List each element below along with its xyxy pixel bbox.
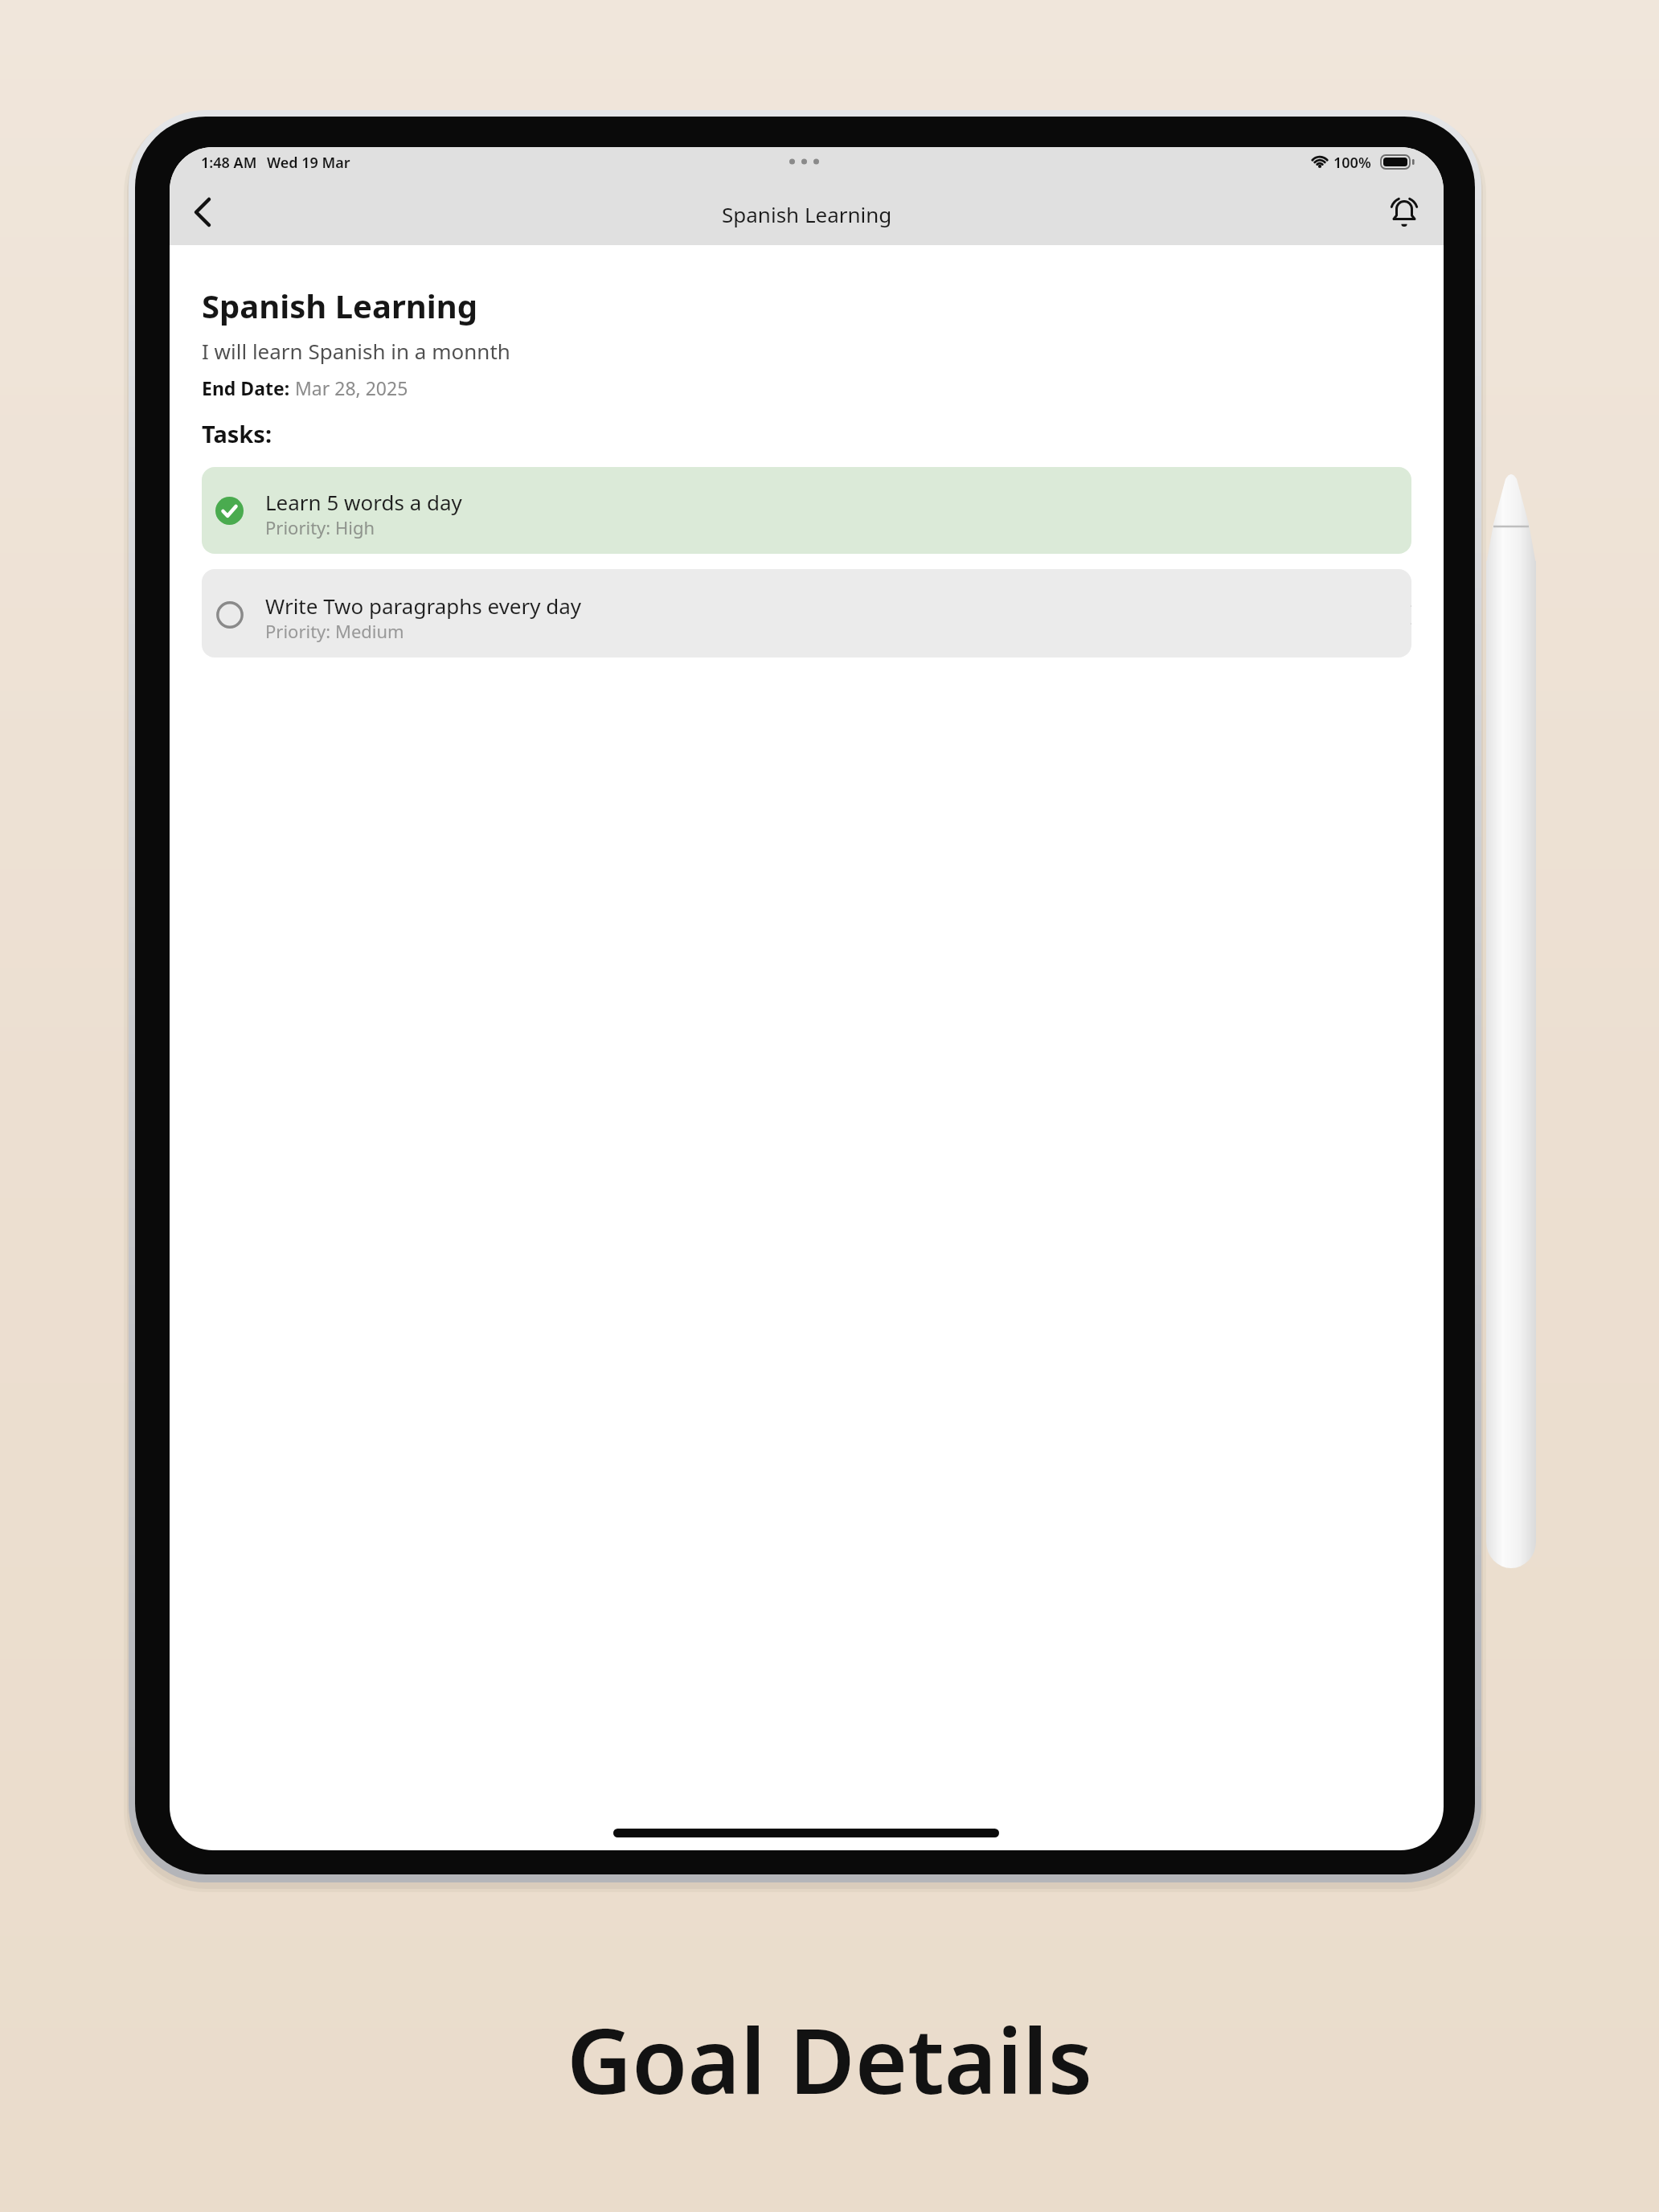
button[interactable]: Write Two paragraphs every day — [202, 569, 1411, 657]
staticText: End Date: — [202, 375, 295, 400]
staticText: 1:48 AM — [201, 153, 257, 173]
button[interactable] — [1383, 191, 1425, 233]
staticText: Goal Details — [567, 1997, 1092, 2120]
staticText: Write Two paragraphs every day — [265, 592, 582, 620]
staticText: I will learn Spanish in a monnth — [202, 337, 510, 365]
staticText: Spanish Learning — [202, 284, 478, 327]
staticText: Priority: Medium — [265, 619, 404, 643]
staticText: Wed 19 Mar — [267, 153, 350, 173]
staticText: Mar 28, 2025 — [295, 375, 408, 400]
staticText: Tasks: — [202, 418, 272, 449]
button[interactable] — [183, 193, 222, 231]
staticText: Spanish Learning — [722, 200, 892, 228]
staticText: 100% — [1333, 153, 1371, 173]
staticText: Priority: High — [265, 515, 375, 539]
button[interactable]: Learn 5 words a day — [202, 467, 1411, 554]
staticText: Learn 5 words a day — [265, 488, 462, 516]
